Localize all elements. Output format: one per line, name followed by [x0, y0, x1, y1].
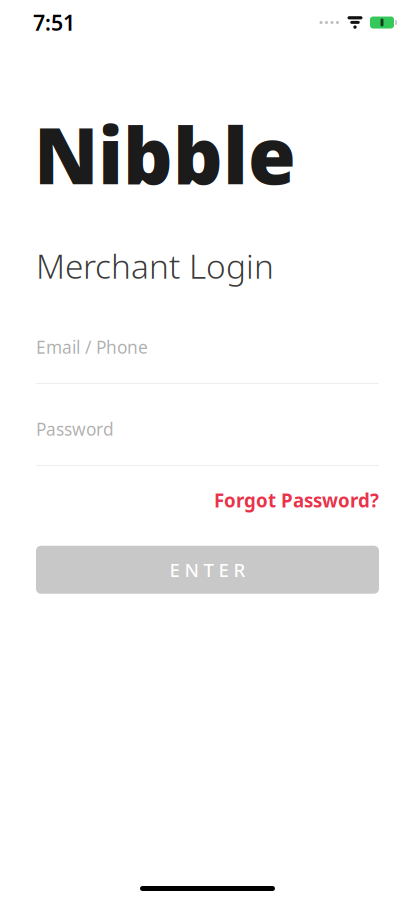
staticText: Nibble — [34, 103, 296, 206]
staticText: Merchant Login — [36, 244, 274, 288]
button[interactable]: Forgot Password? — [214, 482, 379, 519]
staticText: Password — [36, 417, 114, 440]
staticText: Email / Phone — [36, 335, 148, 358]
staticText: E N T E R — [169, 557, 245, 582]
staticText: Forgot Password? — [214, 488, 379, 513]
button[interactable]: E N T E R — [36, 546, 379, 594]
staticText: 7:51 — [33, 8, 75, 37]
